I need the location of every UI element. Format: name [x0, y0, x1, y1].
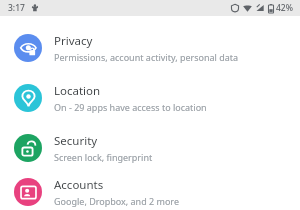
staticText: Security	[54, 133, 98, 149]
button[interactable]: Location	[0, 73, 300, 123]
staticText: Location	[54, 83, 101, 99]
button[interactable]: Accounts	[0, 173, 300, 210]
staticText: Privacy	[54, 33, 93, 49]
button[interactable]: Privacy	[0, 23, 300, 73]
button[interactable]: Security	[0, 123, 300, 173]
staticText: Accounts	[54, 177, 104, 193]
staticText: On - 29 apps have access to location	[54, 101, 207, 113]
staticText: Screen lock, fingerprint	[54, 151, 153, 163]
staticText: Google, Dropbox, and 2 more	[54, 195, 179, 207]
staticText: 3:17	[8, 2, 25, 14]
staticText: Permissions, account activity, personal …	[54, 51, 239, 63]
staticText: 42%	[276, 2, 293, 14]
